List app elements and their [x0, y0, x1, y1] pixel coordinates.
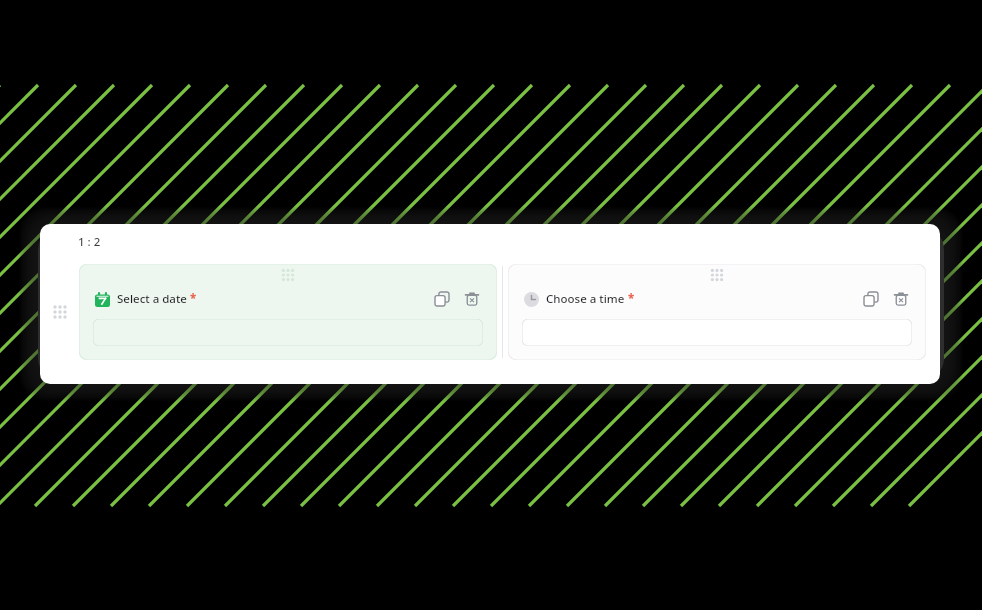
- button[interactable]: [522, 319, 912, 346]
- button[interactable]: Delete field: [461, 288, 483, 310]
- button[interactable]: [93, 319, 483, 346]
- button[interactable]: Delete field: [890, 288, 912, 310]
- button[interactable]: Drag field: [79, 264, 497, 360]
- staticText: 1 : 2: [78, 234, 101, 250]
- staticText: *: [628, 291, 635, 307]
- button[interactable]: Reorder row: [40, 262, 79, 362]
- button[interactable]: Duplicate field: [431, 288, 453, 310]
- staticText: Select a date: [117, 291, 187, 307]
- button[interactable]: Duplicate field: [860, 288, 882, 310]
- staticText: *: [190, 291, 197, 307]
- button[interactable]: Drag field: [508, 264, 926, 286]
- staticText: Choose a time: [546, 291, 625, 307]
- button[interactable]: Drag field: [508, 264, 926, 360]
